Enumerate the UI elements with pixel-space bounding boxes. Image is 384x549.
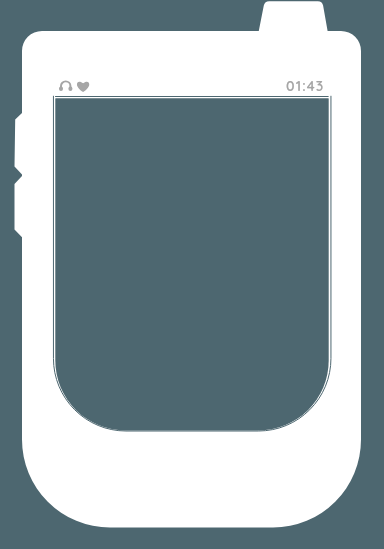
button[interactable]: Favourite (75, 78, 91, 94)
staticText: 01:43 (286, 77, 325, 95)
button[interactable]: 01:43 (283, 75, 324, 93)
button[interactable]: Headphones connected (57, 78, 74, 93)
